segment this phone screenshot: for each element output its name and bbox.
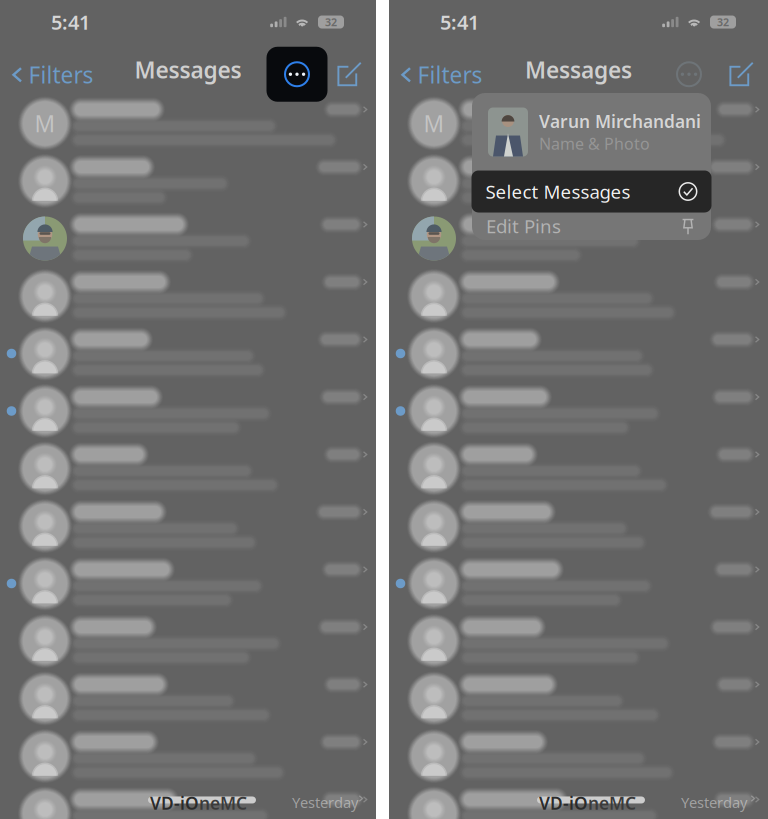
button[interactable]: Compose <box>721 54 761 94</box>
staticText: Filters <box>28 60 93 90</box>
button[interactable]: Compose <box>329 54 369 94</box>
staticText: M <box>34 108 55 138</box>
staticText: VD-iO <box>539 791 588 814</box>
staticText: Yesterday <box>681 792 747 812</box>
staticText: 32 <box>717 15 729 29</box>
staticText: Select Messages <box>485 179 630 204</box>
staticText: Edit Pins <box>486 214 561 238</box>
button[interactable]: Varun Mirchandani <box>472 93 711 170</box>
staticText: Messages <box>134 55 241 85</box>
staticText: 32 <box>325 15 337 29</box>
staticText: 5:41 <box>440 9 479 35</box>
staticText: neMC <box>588 791 636 814</box>
button[interactable]: Filters <box>1 51 104 99</box>
staticText: Name & Photo <box>539 133 650 154</box>
button[interactable]: Filters <box>390 51 493 99</box>
staticText: Messages <box>525 55 632 85</box>
staticText: M <box>423 108 444 138</box>
staticText: Yesterday <box>292 792 358 812</box>
button[interactable]: More <box>266 47 327 102</box>
button[interactable]: Edit Pins <box>472 212 711 239</box>
staticText: neMC <box>199 791 247 814</box>
staticText: 5:41 <box>51 9 90 35</box>
staticText: VD-iO <box>150 791 199 814</box>
button[interactable]: Select Messages <box>471 170 711 212</box>
staticText: Filters <box>417 60 482 90</box>
staticText: Varun Mirchandani <box>539 110 701 133</box>
button[interactable]: More <box>658 47 719 102</box>
